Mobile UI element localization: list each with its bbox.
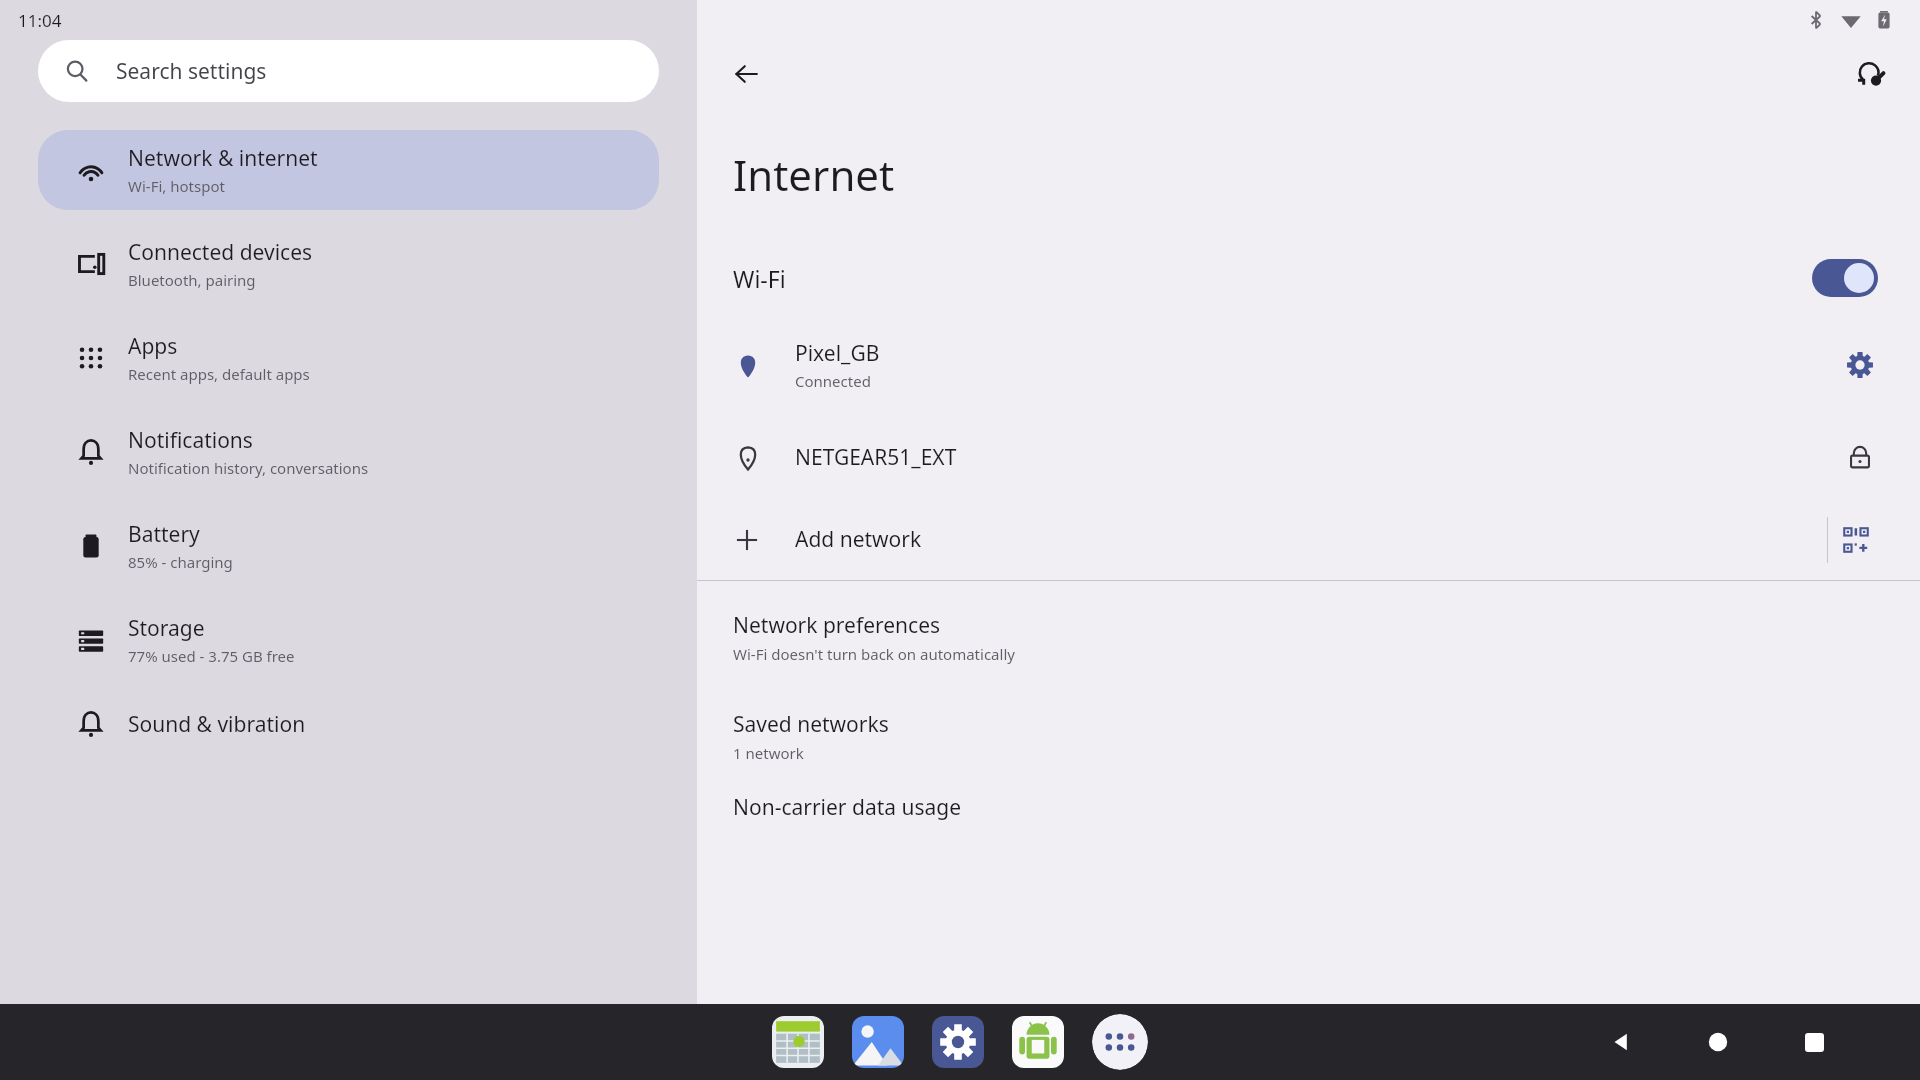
button[interactable]: Add network: [733, 509, 1827, 570]
staticText: NETGEAR51_EXT: [795, 443, 957, 472]
button[interactable]: Settings: [932, 1016, 984, 1068]
button[interactable]: All apps: [1092, 1014, 1148, 1070]
button[interactable]: Saved networks: [697, 694, 1920, 779]
staticText: Sound & vibration: [128, 710, 306, 739]
button[interactable]: Storage: [38, 600, 659, 680]
button[interactable]: Calendar: [772, 1016, 824, 1068]
button[interactable]: Photos: [852, 1016, 904, 1068]
staticText: Internet: [733, 146, 895, 203]
button[interactable]: Network settings for Pixel_GB: [1836, 341, 1884, 389]
staticText: Connected: [795, 371, 871, 391]
button[interactable]: Sound & vibration: [38, 694, 659, 754]
staticText: Apps: [128, 332, 178, 361]
button[interactable]: API Demos: [1012, 1016, 1064, 1068]
staticText: Search settings: [116, 57, 267, 86]
button[interactable]: Recents: [1794, 1022, 1834, 1062]
staticText: Network preferences: [733, 611, 941, 640]
staticText: Network & internet: [128, 144, 318, 173]
button[interactable]: Search settings: [38, 40, 659, 102]
staticText: Wi-Fi, hotspot: [128, 176, 225, 196]
button[interactable]: Network preferences: [697, 595, 1920, 680]
button[interactable]: Secured network: [1836, 433, 1884, 481]
staticText: Pixel_GB: [795, 339, 880, 368]
button[interactable]: Back: [1602, 1022, 1642, 1062]
staticText: Connected devices: [128, 238, 313, 267]
button[interactable]: Wi-Fi: [697, 249, 1920, 307]
button[interactable]: Pixel_GB: [697, 325, 1920, 405]
staticText: Storage: [128, 614, 205, 643]
staticText: 1 network: [733, 743, 804, 763]
button[interactable]: Back: [723, 50, 771, 98]
staticText: 11:04: [18, 9, 62, 32]
staticText: 77% used - 3.75 GB free: [128, 646, 295, 666]
staticText: Wi-Fi: [733, 263, 1812, 294]
button[interactable]: Connected devices: [38, 224, 659, 304]
button[interactable]: Battery: [38, 506, 659, 586]
staticText: Battery: [128, 520, 200, 549]
staticText: Notification history, conversations: [128, 458, 369, 478]
other: Wi-Fi on: [1812, 259, 1878, 297]
button[interactable]: Home: [1698, 1022, 1738, 1062]
staticText: Add network: [795, 525, 922, 554]
staticText: Bluetooth, pairing: [128, 270, 256, 290]
button[interactable]: Network & internet: [38, 130, 659, 210]
staticText: Wi-Fi doesn't turn back on automatically: [733, 644, 1015, 664]
staticText: Notifications: [128, 426, 253, 455]
staticText: 85% - charging: [128, 552, 233, 572]
staticText: Saved networks: [733, 710, 889, 739]
button[interactable]: Scan QR code: [1828, 512, 1884, 568]
button[interactable]: Fix connectivity: [1846, 50, 1894, 98]
button[interactable]: NETGEAR51_EXT: [697, 419, 1920, 495]
staticText: Non-carrier data usage: [733, 793, 962, 822]
button[interactable]: Notifications: [38, 412, 659, 492]
button[interactable]: Apps: [38, 318, 659, 398]
staticText: Recent apps, default apps: [128, 364, 310, 384]
